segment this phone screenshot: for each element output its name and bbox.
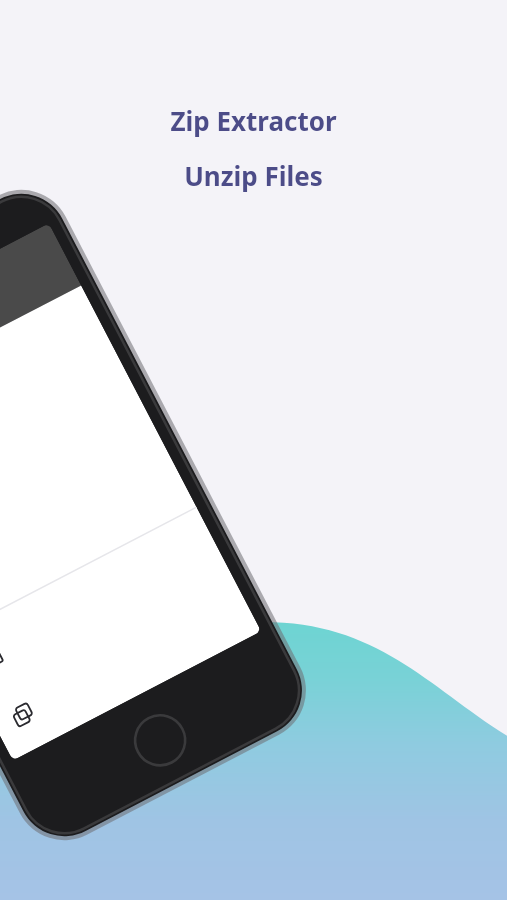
- staticText: Unzip Files: [184, 158, 323, 193]
- staticText: Zip Extractor: [170, 103, 337, 138]
